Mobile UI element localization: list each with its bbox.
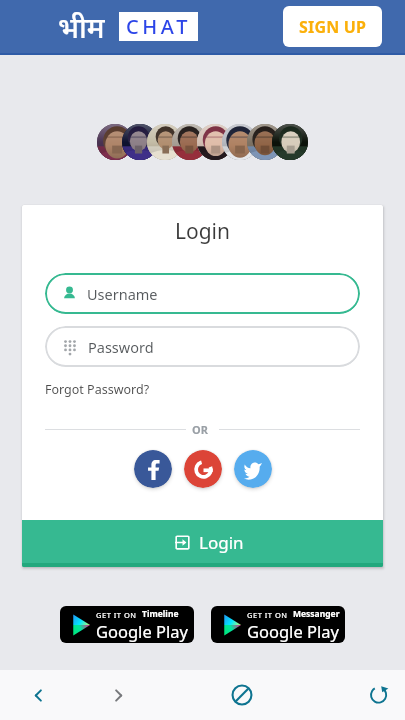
button[interactable]: User avatar bbox=[272, 124, 308, 160]
button[interactable]: User avatar bbox=[222, 124, 258, 160]
staticText: Google Play bbox=[247, 620, 339, 642]
staticText: Login bbox=[199, 531, 244, 554]
button[interactable]: User avatar bbox=[122, 124, 158, 160]
button[interactable]: Login bbox=[22, 520, 383, 567]
staticText: GET IT ON bbox=[247, 610, 288, 620]
button[interactable]: SIGN UP bbox=[283, 6, 382, 47]
button[interactable]: User avatar bbox=[247, 124, 283, 160]
button[interactable]: Forward bbox=[90, 670, 147, 720]
button[interactable]: GET IT ON bbox=[211, 606, 345, 643]
staticText: GET IT ON bbox=[96, 610, 137, 620]
button[interactable]: Google bbox=[184, 450, 222, 488]
staticText: Password bbox=[88, 337, 154, 357]
button[interactable]: User avatar bbox=[97, 124, 133, 160]
button[interactable]: Stop bbox=[213, 670, 270, 720]
button[interactable]: User avatar bbox=[147, 124, 183, 160]
staticText: SIGN UP bbox=[299, 16, 367, 38]
button[interactable]: Twitter bbox=[234, 450, 272, 488]
button[interactable]: Reload bbox=[352, 670, 405, 720]
staticText: Timeline bbox=[142, 608, 179, 620]
staticText: भीम bbox=[58, 7, 105, 46]
staticText: Messanger bbox=[293, 608, 340, 620]
button[interactable]: Facebook bbox=[134, 450, 172, 488]
staticText: Google Play bbox=[96, 620, 188, 642]
staticText: Forgot Password? bbox=[45, 381, 150, 398]
button[interactable]: Username bbox=[45, 273, 360, 314]
button[interactable]: Password bbox=[45, 326, 360, 367]
staticText: CHAT bbox=[126, 13, 191, 40]
button[interactable]: Back bbox=[10, 670, 67, 720]
button[interactable]: Forgot Password? bbox=[45, 381, 150, 398]
button[interactable]: User avatar bbox=[197, 124, 233, 160]
button[interactable]: GET IT ON bbox=[60, 606, 194, 643]
staticText: Username bbox=[87, 284, 158, 304]
staticText: Login bbox=[175, 217, 231, 246]
staticText: OR bbox=[192, 422, 208, 437]
button[interactable]: User avatar bbox=[172, 124, 208, 160]
